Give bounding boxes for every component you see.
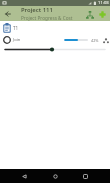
button[interactable]: Assignees <box>101 36 110 45</box>
button[interactable]: Recents <box>79 170 92 183</box>
staticText: Project Progress & Cost <box>21 15 73 21</box>
staticText: Project 111 <box>21 6 53 14</box>
button[interactable]: Back <box>18 170 31 183</box>
staticText: 42% <box>91 38 99 43</box>
button[interactable]: Add <box>96 8 109 21</box>
button[interactable]: Join <box>0 34 110 45</box>
button[interactable]: Back <box>0 6 15 21</box>
button[interactable]: T1 <box>0 21 110 34</box>
staticText: Join <box>13 37 21 43</box>
button[interactable]: Home <box>49 170 62 183</box>
staticText: 11:03 <box>98 0 109 6</box>
button[interactable]: Hierarchy <box>83 8 96 21</box>
staticText: T1 <box>13 25 19 31</box>
